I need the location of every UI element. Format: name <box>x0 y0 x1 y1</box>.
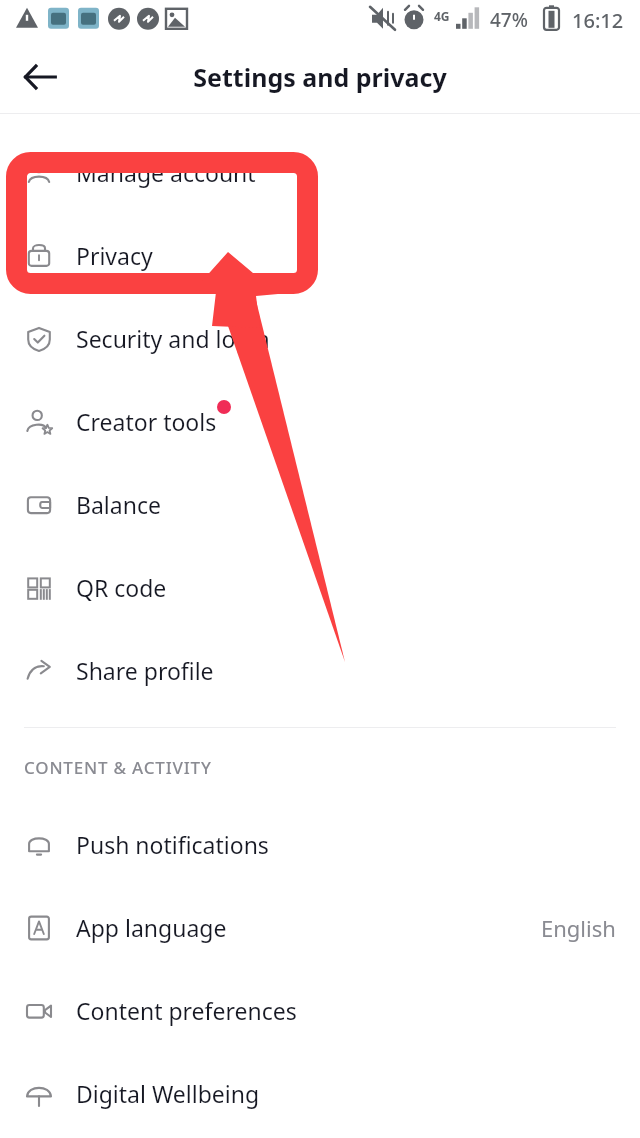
staticText: QR code <box>76 572 167 603</box>
staticText: Privacy <box>76 240 153 271</box>
button[interactable]: QR code <box>0 546 640 629</box>
staticText: Settings and privacy <box>193 60 447 94</box>
button[interactable]: App language <box>0 886 640 969</box>
button[interactable]: Privacy <box>0 214 640 297</box>
button[interactable]: Push notifications <box>0 803 640 886</box>
staticText: English <box>541 913 616 943</box>
staticText: CONTENT & ACTIVITY <box>24 756 212 779</box>
button[interactable]: Back <box>14 51 66 103</box>
button[interactable]: Balance <box>0 463 640 546</box>
staticText: Digital Wellbeing <box>76 1078 260 1109</box>
staticText: Security and login <box>76 323 270 354</box>
button[interactable]: Content preferences <box>0 969 640 1052</box>
staticText: App language <box>76 912 227 943</box>
button[interactable]: Security and login <box>0 297 640 380</box>
staticText: Creator tools <box>76 406 217 437</box>
staticText: Content preferences <box>76 995 297 1026</box>
staticText: Manage account <box>76 157 256 188</box>
button[interactable]: Share profile <box>0 629 640 712</box>
button[interactable]: Creator tools <box>0 380 640 463</box>
button[interactable]: Digital Wellbeing <box>0 1052 640 1135</box>
staticText: Share profile <box>76 655 214 686</box>
staticText: 4G <box>434 8 450 24</box>
staticText: 47% <box>490 7 528 33</box>
staticText: Push notifications <box>76 829 269 860</box>
staticText: 16:12 <box>572 7 624 34</box>
button[interactable]: Manage account <box>0 131 640 214</box>
staticText: Balance <box>76 489 161 520</box>
